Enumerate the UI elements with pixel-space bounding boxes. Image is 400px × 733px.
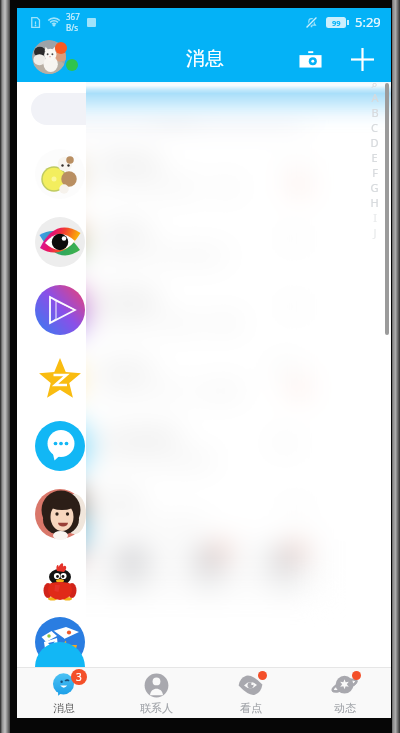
staticText: 腾讯微视 <box>97 291 157 310</box>
staticText: 消息 <box>186 47 224 71</box>
staticText: B <box>371 105 379 120</box>
button[interactable]: 3 <box>86 543 94 593</box>
button[interactable]: 动态 <box>297 668 391 718</box>
staticText: 5:29 <box>355 13 381 31</box>
button[interactable]: 小雨点 <box>86 480 322 542</box>
staticText: A <box>371 90 379 105</box>
staticText: C <box>371 120 378 135</box>
staticText: 动态 <box>334 701 356 715</box>
button[interactable]: 小雨点 <box>17 480 391 548</box>
staticText: H <box>370 195 379 210</box>
button[interactable]: 搜索 <box>86 93 308 125</box>
staticText: F <box>372 165 378 180</box>
staticText: 好的，我马上就过来～ <box>97 516 217 531</box>
staticText: 您有3条未读消息提醒 <box>97 451 212 467</box>
button[interactable]: 联系人 <box>94 543 170 593</box>
button[interactable]: QQ消息助手 <box>86 412 322 480</box>
staticText: 腾讯微视 <box>97 291 157 310</box>
staticText: 消息 <box>53 701 75 715</box>
staticText: 367 <box>66 11 80 22</box>
staticText: 搜索 <box>166 101 192 117</box>
staticText: 99 <box>332 18 341 28</box>
button[interactable]: 兴趣部落 <box>17 616 391 667</box>
staticText: QQ消息助手 <box>97 426 181 446</box>
staticText: 发现好玩的小视频，快来看看 <box>97 315 244 330</box>
button[interactable]: 动态 <box>246 543 322 593</box>
staticText: 联系人 <box>140 701 173 715</box>
button[interactable]: 腾讯微视 <box>17 276 391 344</box>
button[interactable]: Camera <box>292 41 328 77</box>
button[interactable]: QQ看点 <box>17 208 391 276</box>
button[interactable]: Add <box>344 41 380 77</box>
staticText: ⌕ <box>371 79 378 90</box>
button[interactable]: QQ团队 <box>17 548 391 616</box>
staticText: J <box>373 225 377 240</box>
staticText: 小雨点 <box>97 492 142 511</box>
staticText: 您有3条未读消息提醒 <box>97 451 212 467</box>
staticText: B/s <box>66 22 79 33</box>
staticText: G <box>370 180 379 195</box>
button[interactable]: 柠檬不酸 <box>17 140 391 208</box>
staticText: 3 <box>76 670 82 684</box>
staticText: QQ团队 <box>97 562 151 582</box>
staticText: 搜索 <box>200 101 226 117</box>
staticText: 发现好玩的小视频，快来看看 <box>97 315 253 330</box>
button[interactable]: 搜索 <box>31 93 377 125</box>
button[interactable]: QQ消息助手 <box>17 412 391 480</box>
button[interactable]: 看点 <box>170 543 246 593</box>
button[interactable]: QQ看点 <box>86 208 322 276</box>
button[interactable]: QQ会员 <box>17 344 391 412</box>
button[interactable]: 3 <box>17 668 110 718</box>
staticText: I <box>373 210 377 225</box>
staticText: E <box>371 150 378 165</box>
staticText: 5:21 <box>353 157 375 172</box>
staticText: 好的，我马上就过来～ <box>97 519 217 534</box>
staticText: QQ消息助手 <box>97 426 181 446</box>
staticText: 小雨点 <box>97 495 142 514</box>
staticText: 看点 <box>240 701 262 715</box>
button[interactable]: 腾讯微视 <box>86 276 322 344</box>
button[interactable]: 看点 <box>203 668 297 718</box>
staticText: D <box>370 135 379 150</box>
button[interactable]: 联系人 <box>110 668 203 718</box>
button[interactable]: Profile <box>32 40 67 75</box>
